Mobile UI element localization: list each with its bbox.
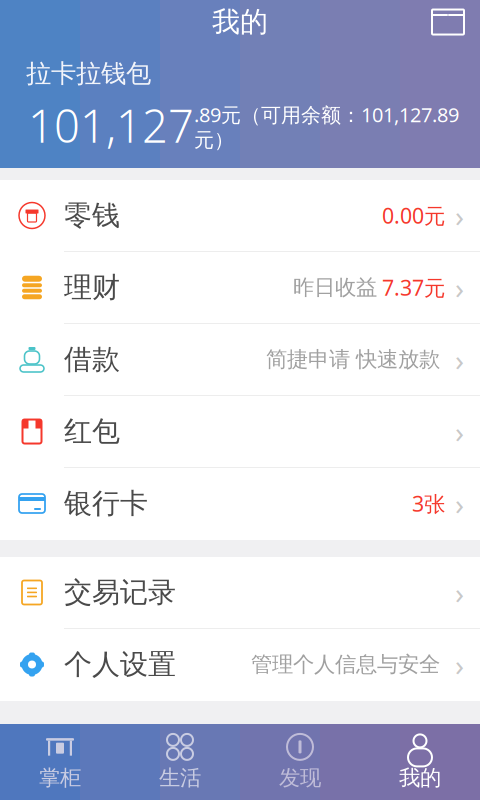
staticText: 零钱	[64, 198, 120, 233]
button[interactable]: 零钱	[0, 180, 480, 252]
staticText: 交易记录	[64, 575, 176, 610]
button[interactable]: 红包	[0, 396, 480, 468]
staticText: .89元（可用余额：101,127.89元）	[194, 101, 459, 152]
staticText: 我的	[212, 5, 268, 39]
staticText: ›	[455, 573, 464, 612]
button[interactable]: Messages	[432, 3, 480, 40]
button[interactable]: 掌柜	[0, 724, 120, 800]
staticText: 红包	[64, 414, 120, 449]
staticText: 借款	[64, 342, 120, 377]
staticText: ›	[455, 268, 464, 307]
staticText: 3张	[412, 489, 445, 518]
button[interactable]: 发现	[240, 724, 360, 800]
staticText: 拉卡拉钱包	[26, 58, 151, 89]
staticText: 理财	[64, 270, 120, 305]
staticText: 7.37元	[382, 273, 445, 302]
staticText: 生活	[159, 765, 201, 791]
staticText: 掌柜	[39, 765, 81, 791]
button[interactable]: 银行卡	[0, 468, 480, 540]
button[interactable]: 理财	[0, 252, 480, 324]
button[interactable]: 我的	[360, 724, 480, 800]
staticText: 简捷申请 快速放款	[266, 346, 440, 373]
staticText: 发现	[279, 765, 321, 791]
button[interactable]: 个人设置	[0, 629, 480, 701]
button[interactable]: 交易记录	[0, 557, 480, 629]
staticText: ›	[455, 645, 464, 684]
staticText: ›	[455, 484, 464, 523]
staticText: 101,127	[28, 95, 194, 155]
staticText: 昨日收益	[293, 274, 377, 301]
staticText: ›	[455, 196, 464, 235]
staticText: ›	[455, 340, 464, 379]
staticText: 我的	[399, 765, 441, 791]
button[interactable]: 生活	[120, 724, 240, 800]
staticText: 管理个人信息与安全	[251, 651, 440, 678]
staticText: ›	[455, 412, 464, 451]
staticText: 银行卡	[64, 486, 148, 521]
button[interactable]: 借款	[0, 324, 480, 396]
staticText: 个人设置	[64, 647, 176, 682]
staticText: 0.00元	[382, 201, 445, 230]
